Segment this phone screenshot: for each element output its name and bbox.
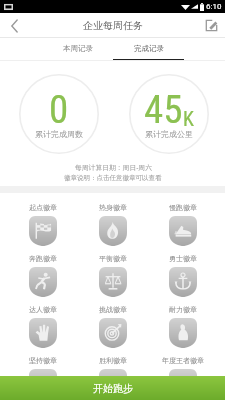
staticText: 45 bbox=[144, 87, 183, 133]
staticText: 慢跑徽章 bbox=[169, 203, 197, 212]
button[interactable]: 起点徽章 bbox=[7, 193, 78, 244]
staticText: 开始跑步 bbox=[93, 382, 133, 395]
staticText: 胜利徽章 bbox=[99, 356, 127, 365]
staticText: 累计完成公里 bbox=[145, 129, 193, 139]
staticText: 6:10 bbox=[206, 2, 222, 11]
button[interactable]: 慢跑徽章 bbox=[148, 193, 218, 244]
button[interactable]: 勇士徽章 bbox=[148, 244, 218, 295]
staticText: 累计完成周数 bbox=[35, 129, 83, 139]
button[interactable]: 年度王者徽章 bbox=[148, 346, 218, 397]
staticText: K bbox=[183, 107, 194, 130]
staticText: 平衡徽章 bbox=[99, 254, 127, 263]
button[interactable]: 耐力徽章 bbox=[148, 295, 218, 346]
staticText: 本周记录 bbox=[63, 44, 93, 53]
staticText: 达人徽章 bbox=[29, 305, 57, 314]
staticText: 企业每周任务 bbox=[83, 19, 143, 32]
button[interactable]: Edit bbox=[197, 13, 225, 38]
button[interactable]: 坚持徽章 bbox=[7, 346, 78, 397]
button[interactable]: 挑战徽章 bbox=[78, 295, 148, 346]
staticText: 徽章说明：点击任意徽章可以查看 bbox=[64, 174, 162, 182]
button[interactable]: 奔跑徽章 bbox=[7, 244, 78, 295]
staticText: 完成记录 bbox=[134, 44, 164, 53]
staticText: 耐力徽章 bbox=[169, 305, 197, 314]
button[interactable]: 本周记录 bbox=[42, 38, 113, 61]
staticText: 每周计算日期：周日-周六 bbox=[75, 163, 152, 172]
staticText: 挑战徽章 bbox=[99, 305, 127, 314]
button[interactable]: 完成记录 bbox=[113, 38, 184, 61]
staticText: 热身徽章 bbox=[99, 203, 127, 212]
button[interactable]: 开始跑步 bbox=[0, 376, 225, 400]
button[interactable]: 胜利徽章 bbox=[78, 346, 148, 397]
staticText: 勇士徽章 bbox=[169, 254, 197, 263]
button[interactable]: Back bbox=[0, 13, 28, 38]
staticText: 年度王者徽章 bbox=[162, 356, 204, 365]
staticText: 起点徽章 bbox=[29, 203, 57, 212]
button[interactable]: 达人徽章 bbox=[7, 295, 78, 346]
button[interactable]: 平衡徽章 bbox=[78, 244, 148, 295]
staticText: 坚持徽章 bbox=[29, 356, 57, 365]
button[interactable]: 热身徽章 bbox=[78, 193, 148, 244]
staticText: 0 bbox=[49, 87, 69, 133]
staticText: 奔跑徽章 bbox=[29, 254, 57, 263]
